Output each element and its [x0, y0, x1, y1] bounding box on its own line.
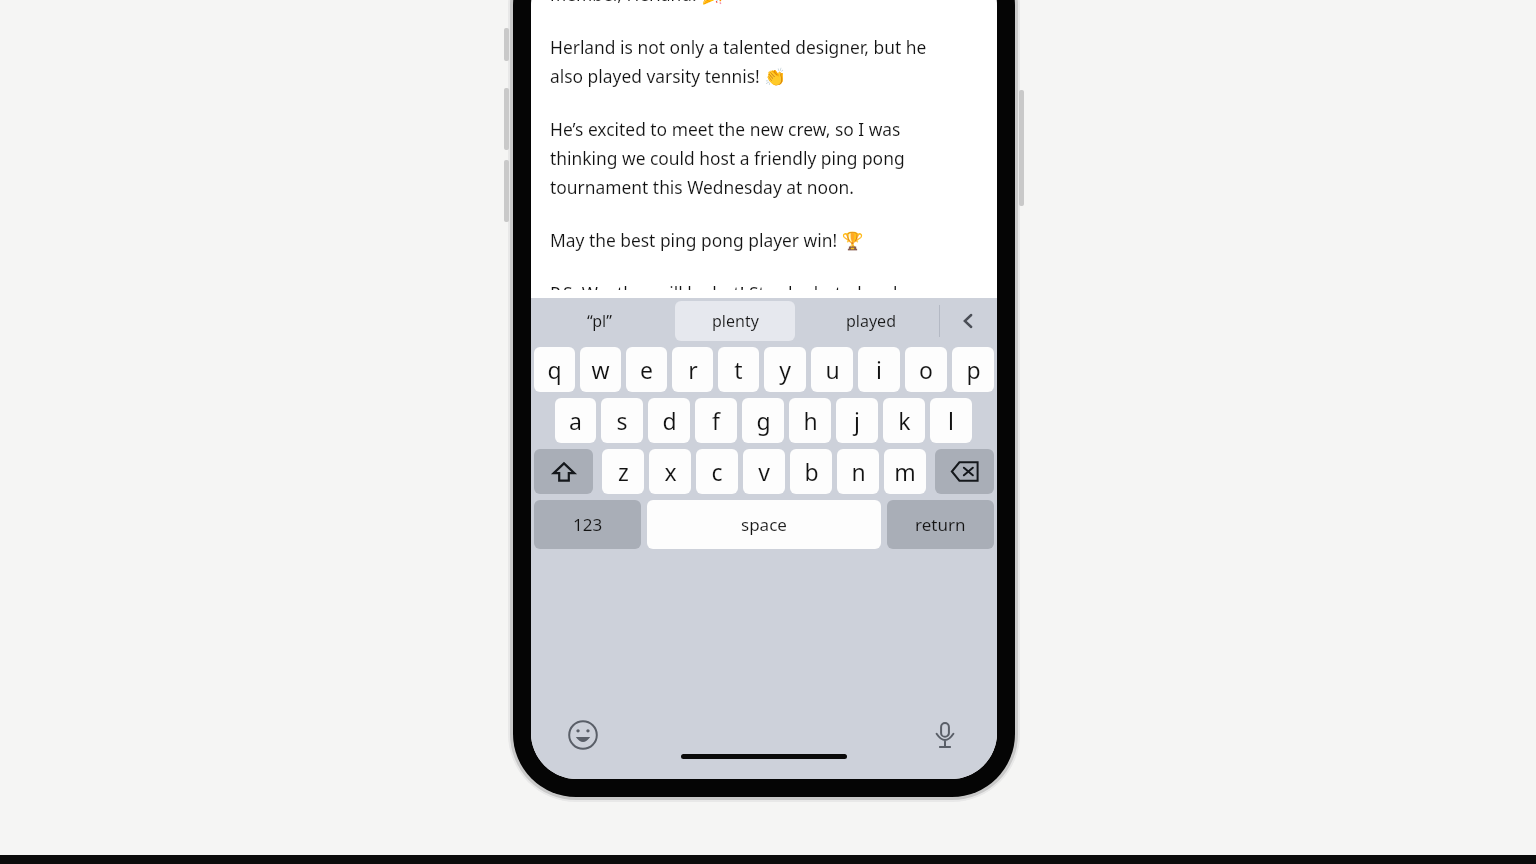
button[interactable]: s [601, 398, 643, 443]
other: Silence switch [504, 28, 509, 61]
staticText: plenty [712, 310, 759, 332]
staticText: h [803, 405, 818, 436]
other: Volume down [504, 160, 509, 222]
staticText: played [846, 310, 896, 332]
staticText: y [779, 354, 791, 385]
staticText: I’m excited to welcome our new Design Te… [550, 0, 918, 6]
staticText: l [948, 405, 954, 436]
button[interactable]: w [580, 347, 621, 392]
button[interactable]: Shift [534, 449, 593, 494]
button[interactable]: Delete [935, 449, 994, 494]
staticText: k [898, 405, 911, 436]
button[interactable]: d [648, 398, 690, 443]
button[interactable]: Dictation [923, 713, 967, 757]
staticText: x [664, 456, 677, 487]
button[interactable]: k [883, 398, 925, 443]
staticText: m [894, 456, 916, 487]
staticText: z [618, 456, 629, 487]
button[interactable]: 123 [534, 500, 641, 549]
button[interactable]: “pl” [531, 301, 667, 341]
button[interactable]: played [803, 301, 939, 341]
staticText: i [876, 354, 882, 385]
staticText: a [569, 405, 582, 436]
button[interactable]: j [836, 398, 878, 443]
button[interactable]: i [858, 347, 900, 392]
button[interactable]: n [837, 449, 879, 494]
staticText: e [640, 354, 653, 385]
staticText: May the best ping pong player win! 🏆 [550, 228, 864, 252]
button[interactable]: Collapse suggestions [939, 298, 997, 343]
button[interactable]: x [649, 449, 691, 494]
button[interactable]: z [602, 449, 644, 494]
staticText: o [919, 354, 933, 385]
button[interactable]: u [811, 347, 853, 392]
staticText: q [547, 354, 562, 385]
staticText: space [741, 513, 787, 536]
button[interactable]: Emoji keyboard [561, 713, 605, 757]
button[interactable]: plenty [675, 301, 795, 341]
staticText: b [804, 456, 819, 487]
button[interactable]: q [534, 347, 575, 392]
button[interactable]: c [696, 449, 738, 494]
staticText: “pl” [587, 310, 612, 332]
staticText: He’s excited to meet the new crew, so I … [550, 117, 905, 199]
staticText: P.S. Weather will be hot! Stay hydrated … [550, 281, 898, 290]
button[interactable]: b [790, 449, 832, 494]
staticText: u [825, 354, 840, 385]
button[interactable]: h [789, 398, 831, 443]
staticText: return [915, 513, 966, 536]
button[interactable]: f [695, 398, 737, 443]
staticText: p [966, 354, 981, 385]
button[interactable]: e [626, 347, 667, 392]
staticText: 123 [573, 513, 603, 536]
button[interactable]: v [743, 449, 785, 494]
staticText: Herland is not only a talented designer,… [550, 35, 927, 88]
button[interactable]: m [884, 449, 926, 494]
button[interactable]: t [718, 347, 759, 392]
staticText: w [591, 354, 610, 385]
staticText: d [662, 405, 677, 436]
button[interactable]: return [887, 500, 994, 549]
staticText: g [756, 405, 771, 436]
staticText: c [711, 456, 723, 487]
staticText: t [734, 354, 743, 385]
staticText: r [688, 354, 698, 385]
staticText: v [758, 456, 770, 487]
button[interactable]: o [905, 347, 947, 392]
staticText: f [712, 405, 720, 436]
button[interactable]: y [764, 347, 806, 392]
other: Volume up [504, 88, 509, 150]
staticText: n [851, 456, 866, 487]
button[interactable]: r [672, 347, 713, 392]
button[interactable]: space [647, 500, 881, 549]
button[interactable]: p [952, 347, 994, 392]
staticText: j [854, 405, 860, 436]
staticText: s [616, 405, 628, 436]
button[interactable]: g [742, 398, 784, 443]
button[interactable]: l [930, 398, 972, 443]
button[interactable]: a [555, 398, 596, 443]
